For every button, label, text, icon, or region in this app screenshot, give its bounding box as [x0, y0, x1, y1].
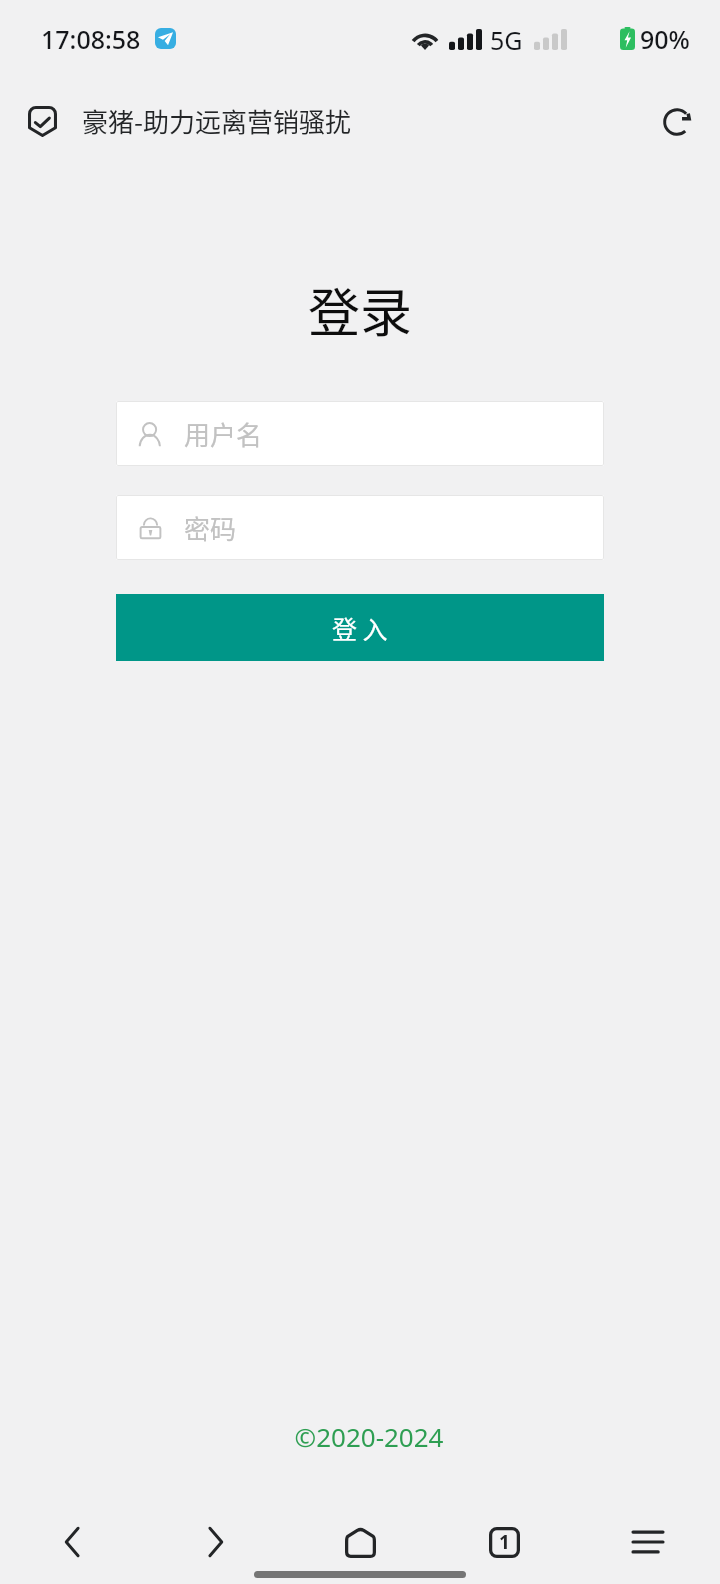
staticText: 5G [490, 23, 523, 57]
button[interactable]: Forward [180, 1506, 252, 1578]
staticText: 豪猪-助力远离营销骚扰 [82, 102, 352, 140]
button[interactable]: 密码 [116, 495, 604, 560]
button[interactable]: 用户名 [116, 401, 604, 466]
button[interactable]: Menu [612, 1506, 684, 1578]
staticText: 90% [640, 22, 690, 56]
staticText: 17:08:58 [41, 22, 141, 56]
staticText: ©2020-2024 [9, 1419, 720, 1454]
button[interactable]: Refresh [652, 97, 702, 147]
button[interactable]: Tabs [468, 1506, 540, 1578]
staticText: 登录 [0, 272, 720, 347]
staticText: 密码 [184, 509, 237, 547]
staticText: 用户名 [184, 415, 263, 453]
button[interactable]: 登 入 [116, 594, 604, 661]
staticText: 1 [499, 1529, 510, 1555]
staticText: 登 入 [332, 610, 388, 646]
button[interactable]: Home [324, 1506, 396, 1578]
button[interactable]: Back [36, 1506, 108, 1578]
